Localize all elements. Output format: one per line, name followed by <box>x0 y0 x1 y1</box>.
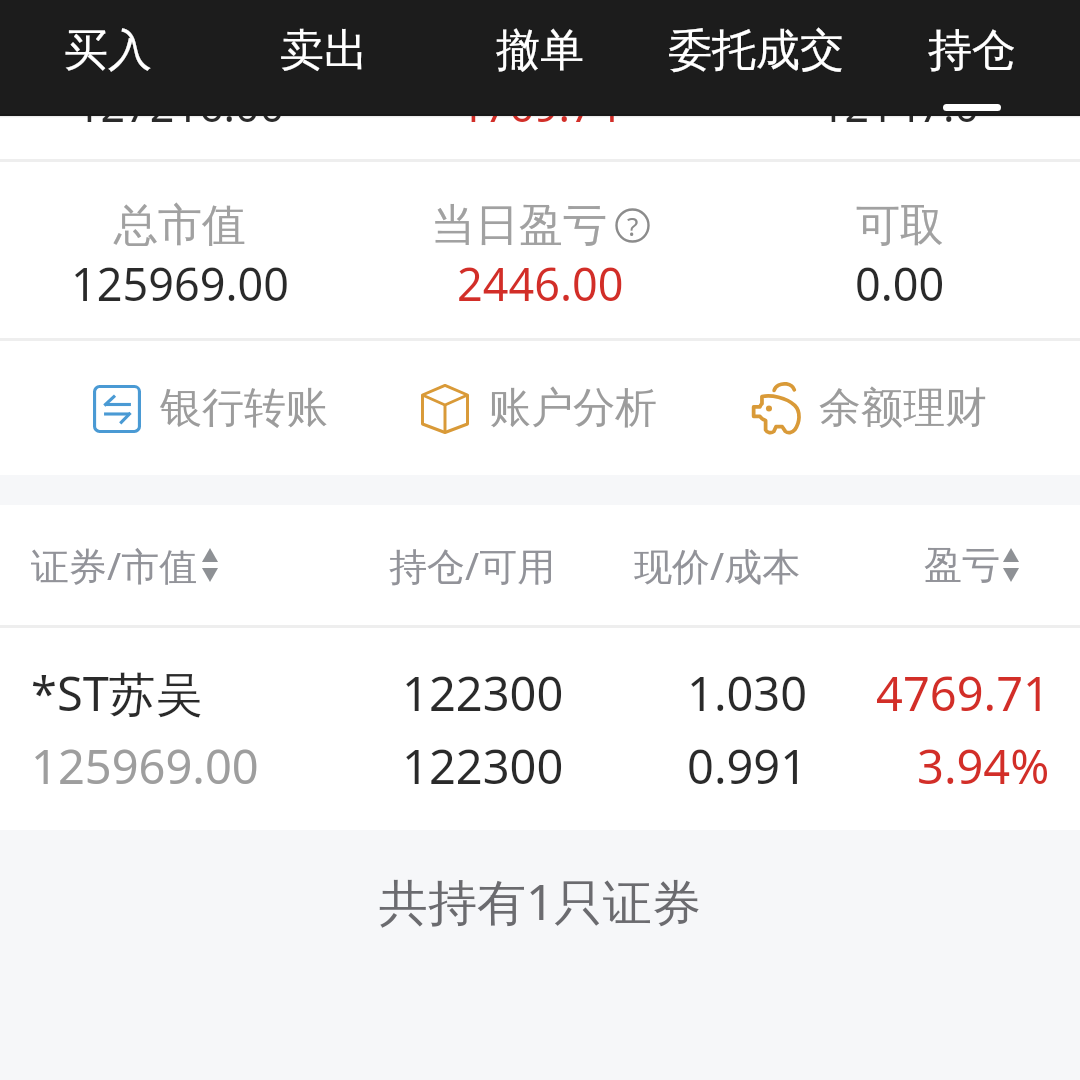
staticText: 0.00 <box>855 253 945 314</box>
button[interactable]: 银行转账 <box>93 372 328 445</box>
button[interactable]: 帮助 <box>615 208 650 243</box>
staticText: 12147.0 <box>820 76 980 135</box>
staticText: 共持有1只证券 <box>379 868 702 935</box>
staticText: 3.94% <box>917 734 1050 798</box>
staticText: 账户分析 <box>489 382 657 435</box>
staticText: 撤单 <box>496 23 584 78</box>
staticText: 盈亏 <box>924 541 1000 589</box>
staticText: 银行转账 <box>160 382 328 435</box>
staticText: 0.991 <box>687 734 808 798</box>
staticText: 余额理财 <box>819 382 987 435</box>
staticText: 现价/成本 <box>634 539 801 591</box>
button[interactable]: 卖出 <box>216 0 432 100</box>
staticText: 持仓/可用 <box>389 539 556 591</box>
staticText: 证券/市值 <box>31 539 198 591</box>
staticText: *ST苏吴 <box>31 661 203 725</box>
staticText: 总市值 <box>114 198 246 253</box>
staticText: ? <box>627 208 639 243</box>
button[interactable]: 委托成交 <box>648 0 864 100</box>
staticText: 1769.74 <box>460 76 620 135</box>
staticText: 4769.71 <box>876 661 1050 725</box>
button[interactable]: 买入 <box>0 0 216 100</box>
staticText: 可取 <box>856 198 944 253</box>
button[interactable]: 持仓/可用 <box>389 539 556 591</box>
button[interactable]: 余额理财 <box>750 372 987 445</box>
staticText: 委托成交 <box>668 23 844 78</box>
staticText: 持仓 <box>928 23 1016 78</box>
staticText: 卖出 <box>280 23 368 78</box>
button[interactable]: *ST苏吴 <box>0 628 1080 830</box>
button[interactable]: 证券/市值 <box>31 539 218 591</box>
staticText: 122300 <box>402 734 564 798</box>
staticText: 127216.00 <box>76 76 285 135</box>
staticText: 125969.00 <box>71 253 289 314</box>
staticText: 122300 <box>402 661 564 725</box>
staticText: 买入 <box>64 23 152 78</box>
button[interactable]: 撤单 <box>432 0 648 100</box>
button[interactable]: 盈亏 <box>924 541 1019 589</box>
staticText: 125969.00 <box>31 734 259 798</box>
button[interactable]: 现价/成本 <box>634 539 801 591</box>
staticText: 1.030 <box>687 661 808 725</box>
staticText: 当日盈亏 <box>431 198 607 253</box>
staticText: 2446.00 <box>457 253 624 314</box>
button[interactable]: 账户分析 <box>421 372 657 445</box>
button[interactable]: 持仓 <box>864 0 1080 100</box>
